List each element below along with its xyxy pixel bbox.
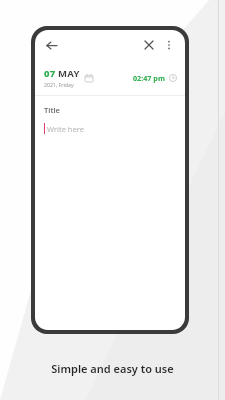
button[interactable]: More options [160,36,178,54]
staticText: 07 MAY [44,67,80,80]
button[interactable]: Close [140,36,158,54]
staticText: 02:47 pm [133,73,165,83]
staticText: Title [44,105,60,115]
button[interactable]: Back [42,36,60,54]
staticText: Write here [47,124,84,134]
button[interactable]: Write here [44,123,185,134]
staticText: Simple and easy to use [51,361,174,376]
staticText: 2021, Friday [44,81,74,88]
button[interactable]: 02:47 pm [133,73,177,83]
button[interactable]: 07 MAY [44,67,93,88]
